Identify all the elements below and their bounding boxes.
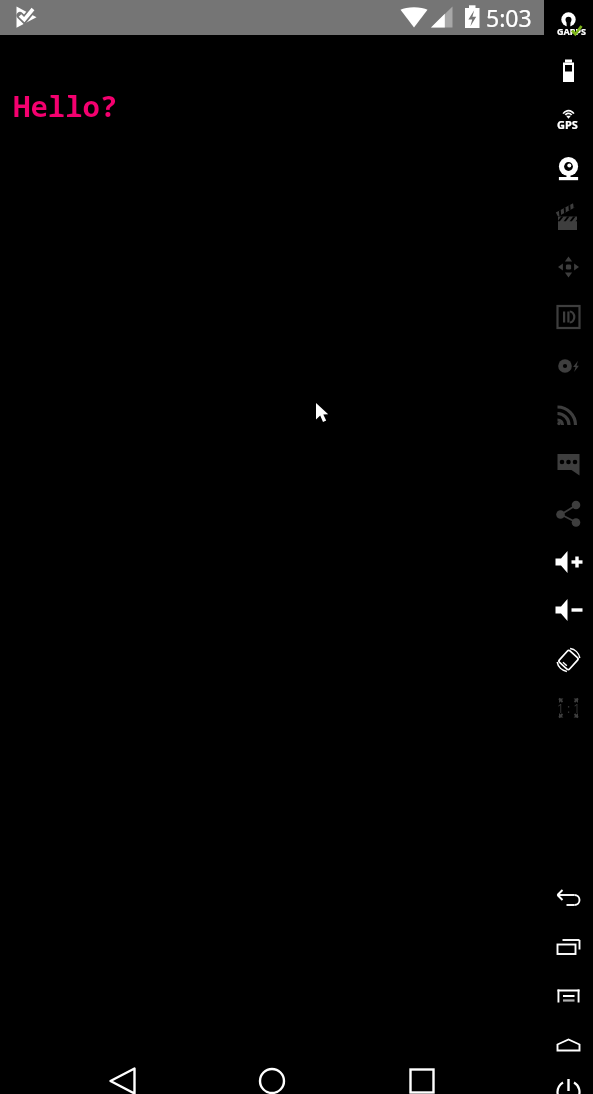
button[interactable]: Webcam [544, 145, 593, 193]
button[interactable]: Overview [544, 923, 593, 971]
staticText: GPS [557, 117, 578, 132]
button[interactable]: Zoom 1:1 [544, 684, 593, 732]
staticText: 1 : 1 [557, 700, 581, 716]
button[interactable]: Recents [398, 1057, 446, 1094]
button[interactable]: Menu [544, 972, 593, 1020]
button[interactable]: Share [544, 489, 593, 537]
button[interactable]: Back [100, 1057, 148, 1094]
button[interactable]: Back [544, 874, 593, 922]
button[interactable]: Power off [544, 1068, 593, 1094]
button[interactable]: Power [544, 342, 593, 390]
button[interactable]: GApps [544, 1, 593, 49]
button[interactable]: Home [544, 1021, 593, 1069]
button[interactable]: Messages [544, 439, 593, 487]
button[interactable]: Home [248, 1057, 296, 1094]
button[interactable]: D-pad [544, 243, 593, 291]
staticText: Hello? [13, 86, 118, 125]
button[interactable]: Volume down [544, 586, 593, 634]
staticText: GAPPS [557, 25, 586, 37]
button[interactable]: Battery [544, 47, 593, 95]
button[interactable]: Cellular [544, 390, 593, 438]
button[interactable]: Volume up [544, 538, 593, 586]
button[interactable]: Rotate [544, 636, 593, 684]
button[interactable]: Device ID [544, 293, 593, 341]
staticText: 5:03 [486, 2, 532, 33]
button[interactable]: Record [544, 194, 593, 242]
button[interactable]: GPS [544, 98, 593, 146]
